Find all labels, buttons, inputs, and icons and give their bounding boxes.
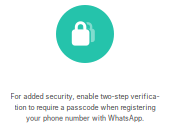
staticText: For added security, enable two-step veri… [10,92,159,101]
staticText: tion to require a passcode when register… [14,103,155,112]
staticText: your phone number with WhatsApp. [26,114,144,122]
